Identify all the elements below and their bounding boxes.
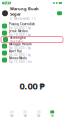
- staticText: Rp 15.000 / bh: [9, 60, 32, 64]
- staticText: Nanas Madu: [9, 56, 27, 60]
- button[interactable]: Tab: [45, 110, 59, 117]
- button[interactable]: Jeruk Medan: [0, 30, 64, 37]
- staticText: Rp 18.000 / kg: [9, 33, 31, 37]
- staticText: Tab: [10, 114, 14, 117]
- staticText: Tab: [37, 114, 41, 117]
- staticText: Rp 30.000 / kg: [9, 46, 31, 50]
- button[interactable]: Tab: [32, 110, 45, 117]
- staticText: 9:41: [3, 0, 10, 6]
- button[interactable]: Mangga Harum: [0, 43, 64, 50]
- staticText: Stok habis: [10, 40, 23, 43]
- button[interactable]: Tab: [18, 110, 32, 117]
- staticText: Tab: [23, 114, 27, 117]
- staticText: Jl. Merdeka No. 12: [10, 17, 36, 20]
- staticText: Rp 24.000 / kg: [9, 26, 31, 30]
- staticText: Rp 42.000 / kg: [9, 53, 31, 57]
- staticText: Jeruk Medan: [9, 29, 28, 33]
- staticText: Apel Fuji: [9, 49, 22, 53]
- staticText: Tab: [50, 114, 54, 117]
- staticText: Semangka: [10, 36, 26, 39]
- button[interactable]: Pisang Cavendish: [0, 23, 64, 30]
- button[interactable]: Nanas Madu: [0, 57, 64, 64]
- staticText: 0.00 ₱: [19, 80, 44, 92]
- staticText: Pisang Cavendish: [9, 22, 35, 26]
- button[interactable]: Tab: [5, 110, 18, 117]
- button[interactable]: Apel Fuji: [0, 50, 64, 57]
- staticText: Mangga Harum: [9, 42, 32, 46]
- staticText: Warung Buah Segar: [10, 6, 39, 17]
